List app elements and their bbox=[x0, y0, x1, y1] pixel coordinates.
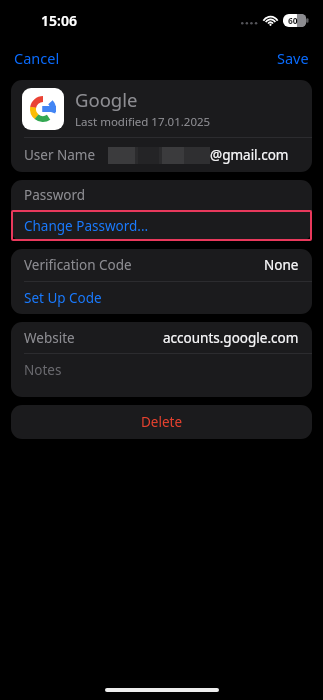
staticText: Notes bbox=[24, 361, 62, 379]
button[interactable]: Website bbox=[11, 322, 312, 353]
staticText: 60 bbox=[288, 15, 298, 27]
button[interactable]: Verification Code bbox=[11, 249, 312, 281]
staticText: None bbox=[264, 256, 299, 274]
staticText: Password bbox=[24, 186, 86, 204]
staticText: accounts.google.com bbox=[163, 329, 299, 347]
staticText: Set Up Code bbox=[24, 289, 102, 307]
staticText: Save bbox=[277, 48, 309, 68]
button[interactable]: Cancel bbox=[10, 43, 64, 73]
staticText: User Name bbox=[24, 146, 96, 164]
staticText: Google bbox=[75, 87, 138, 112]
staticText: Cancel bbox=[14, 48, 60, 68]
button[interactable]: Change Password... bbox=[11, 211, 312, 241]
button[interactable]: Notes bbox=[11, 354, 312, 397]
staticText: @gmail.com bbox=[210, 146, 289, 164]
button[interactable]: Delete bbox=[11, 405, 312, 439]
button[interactable]: Set Up Code bbox=[11, 282, 312, 314]
other: Google bbox=[30, 96, 56, 122]
button[interactable]: Save bbox=[273, 43, 313, 73]
button[interactable]: User Name bbox=[11, 138, 312, 172]
staticText: Change Password... bbox=[24, 217, 149, 235]
staticText: 15:06 bbox=[41, 11, 77, 30]
staticText: Website bbox=[24, 329, 75, 347]
staticText: Last modified 17.01.2025 bbox=[75, 114, 211, 130]
staticText: Delete bbox=[141, 413, 183, 431]
staticText: Verification Code bbox=[24, 256, 132, 274]
